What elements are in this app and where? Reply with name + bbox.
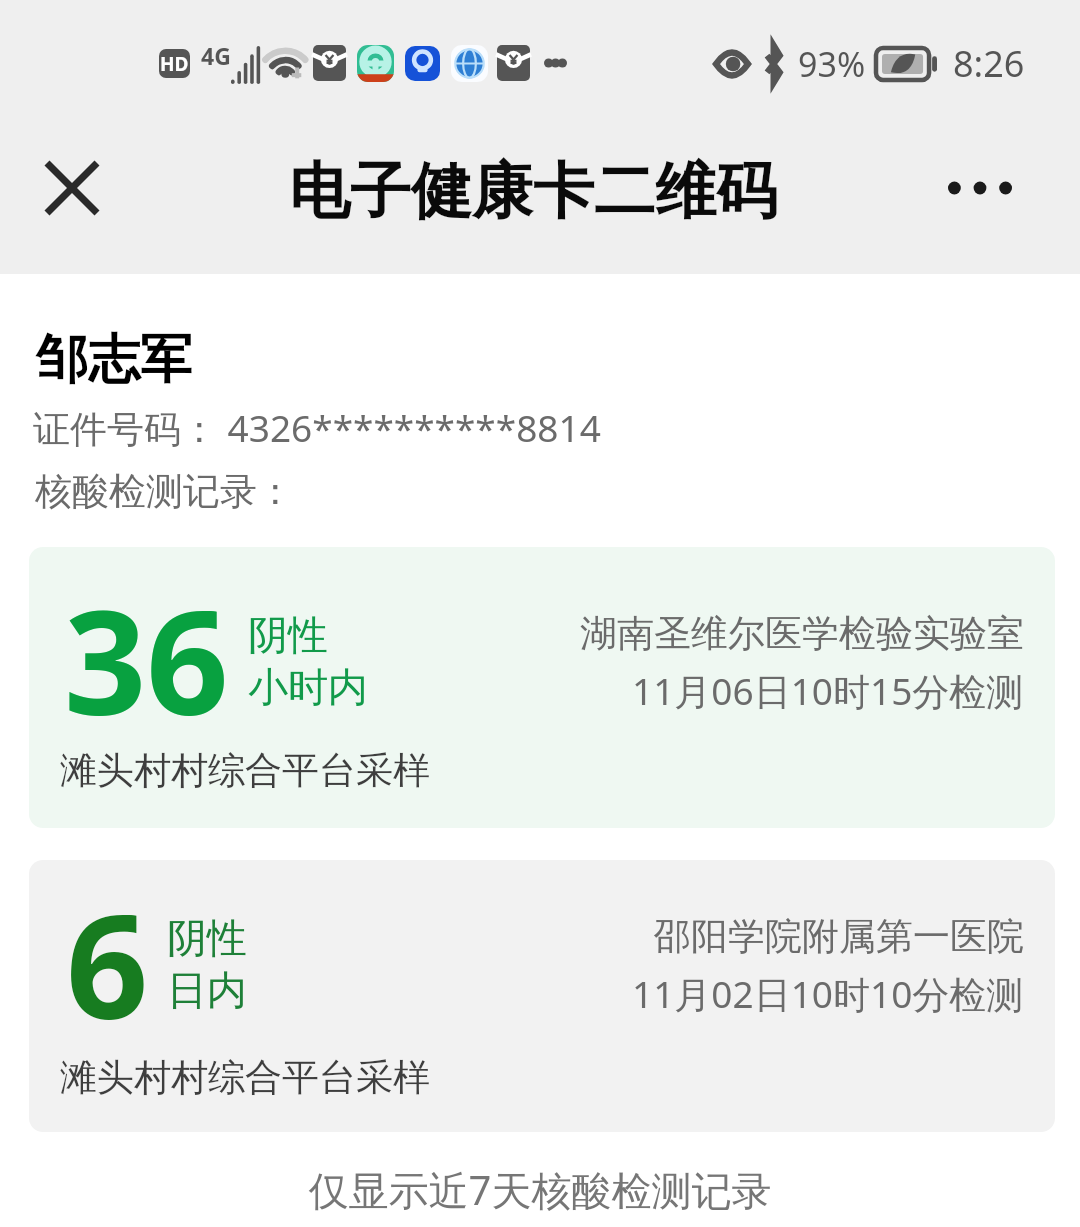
staticText: 邵阳学院附属第一医院	[654, 913, 1024, 960]
staticText: 证件号码： 4326**********8814	[33, 402, 601, 453]
button[interactable]: Close	[29, 145, 115, 231]
staticText: 4G	[201, 40, 231, 71]
button[interactable]: 36	[29, 547, 1055, 828]
button[interactable]: 6	[29, 860, 1055, 1132]
staticText: 滩头村村综合平台采样	[60, 1054, 430, 1101]
staticText: 小时内	[248, 662, 368, 712]
staticText: 电子健康卡二维码	[289, 153, 777, 230]
staticText: 仅显示近7天核酸检测记录	[0, 1162, 1080, 1217]
staticText: 11月06日10时15分检测	[632, 665, 1024, 716]
staticText: 6	[66, 865, 149, 1061]
staticText: 日内	[167, 965, 247, 1015]
staticText: 8:26	[953, 39, 1025, 88]
staticText: 核酸检测记录：	[35, 468, 294, 515]
staticText: 邹志军	[36, 327, 192, 393]
staticText: 11月02日10时10分检测	[632, 968, 1024, 1019]
staticText: 93%	[798, 41, 866, 87]
staticText: 阴性	[167, 913, 247, 963]
button[interactable]: More options	[937, 145, 1023, 231]
staticText: 阴性	[248, 610, 328, 660]
staticText: HD	[160, 51, 189, 77]
staticText: 湖南圣维尔医学检验实验室	[580, 610, 1024, 657]
staticText: 滩头村村综合平台采样	[60, 747, 430, 794]
staticText: 36	[64, 561, 229, 757]
